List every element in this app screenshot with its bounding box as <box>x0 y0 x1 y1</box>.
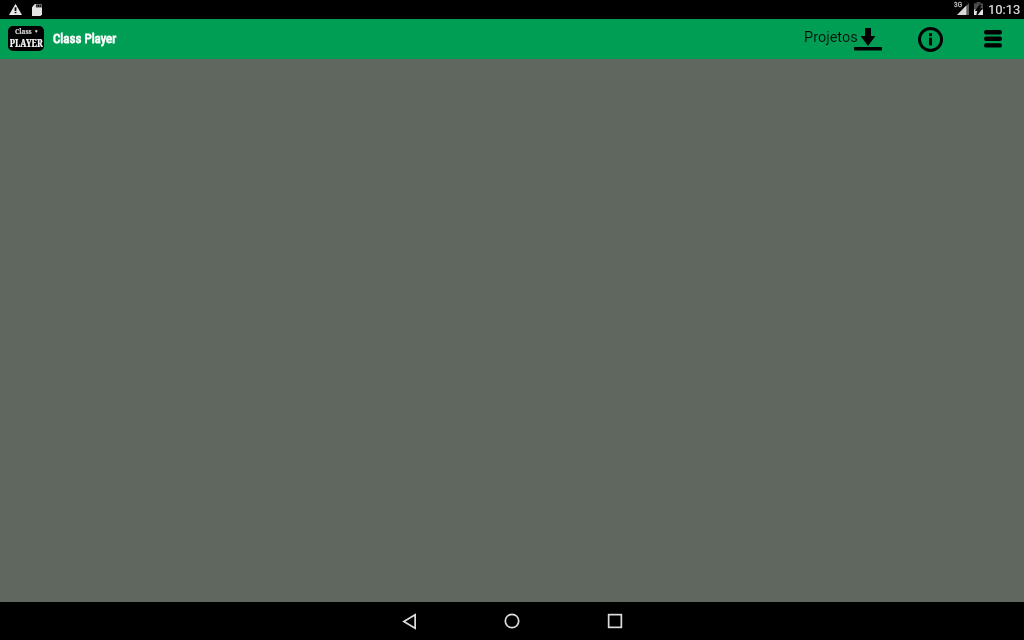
button[interactable]: Info <box>912 19 948 59</box>
staticText: PLAYER <box>10 35 43 50</box>
button[interactable]: Projetos - baixar <box>796 19 886 59</box>
staticText: Class Player <box>53 31 117 46</box>
button[interactable]: Menu <box>972 19 1014 59</box>
button[interactable]: Home <box>461 602 563 640</box>
staticText: Projetos <box>804 29 858 46</box>
button[interactable]: Class Player logo <box>8 26 44 51</box>
staticText: 10:13 <box>988 2 1021 17</box>
staticText: Class • <box>15 27 38 37</box>
button[interactable]: Recents <box>563 602 666 640</box>
staticText: 3G <box>954 1 963 9</box>
button[interactable]: Back <box>358 602 461 640</box>
